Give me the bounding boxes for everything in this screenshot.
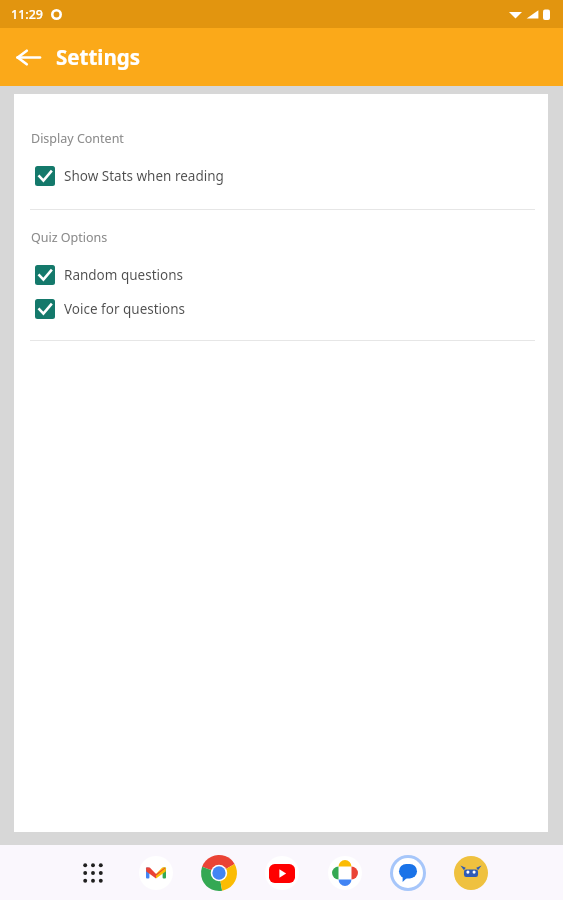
staticText: Quiz Options (31, 229, 108, 246)
button[interactable]: Voice for questions (14, 296, 548, 322)
button[interactable]: Chrome (198, 852, 240, 894)
staticText: Show Stats when reading (64, 167, 224, 185)
button[interactable]: Photos (324, 852, 366, 894)
button[interactable]: Back (0, 29, 56, 85)
staticText: Settings (56, 43, 141, 71)
button[interactable]: Gmail (135, 852, 177, 894)
button[interactable]: Random questions (14, 262, 548, 288)
button[interactable]: All apps (72, 852, 114, 894)
button[interactable]: Messages (387, 852, 429, 894)
staticText: Display Content (31, 130, 124, 147)
staticText: Random questions (64, 266, 183, 284)
button[interactable]: Show Stats when reading (14, 163, 548, 189)
button[interactable]: Avatar (450, 852, 492, 894)
staticText: Voice for questions (64, 300, 186, 318)
button[interactable]: YouTube (261, 852, 303, 894)
staticText: 11:29 (11, 6, 44, 23)
